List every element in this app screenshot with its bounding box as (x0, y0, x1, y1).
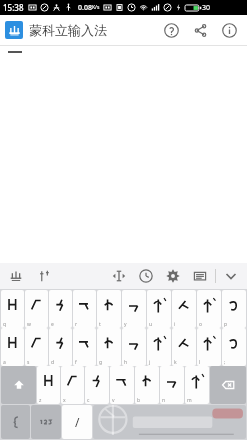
button[interactable]: u (147, 290, 171, 328)
button[interactable]: b (135, 366, 159, 404)
button[interactable]: Info (218, 19, 240, 41)
button[interactable]: g (97, 328, 121, 366)
button[interactable]: d (49, 328, 72, 366)
button[interactable]: j (147, 328, 171, 366)
button[interactable]: Layout (190, 266, 210, 286)
staticText: 蒙科立输入法 (29, 22, 107, 38)
button[interactable]: y (122, 290, 146, 328)
staticText: z (39, 397, 42, 404)
button[interactable]: k (172, 328, 196, 366)
staticText: 0.08 (78, 3, 92, 13)
staticText: n (162, 397, 166, 404)
staticText: r (75, 321, 78, 328)
staticText: p (224, 321, 228, 328)
button[interactable]: v (110, 366, 134, 404)
button[interactable]: Move cursor (109, 266, 129, 286)
staticText: u (149, 321, 153, 328)
staticText: e (51, 321, 54, 328)
button[interactable]: s (25, 328, 48, 366)
staticText: x (63, 397, 66, 404)
button[interactable]: h (122, 328, 146, 366)
button[interactable]: Hide keyboard (221, 266, 241, 286)
button[interactable]: Symbols (1, 405, 30, 439)
button[interactable]: f (73, 328, 96, 366)
button[interactable]: c (85, 366, 109, 404)
staticText: h (124, 359, 128, 366)
staticText: v (112, 397, 115, 404)
button[interactable]: ; (222, 328, 246, 366)
staticText: k (174, 359, 177, 366)
staticText: 30 (202, 3, 211, 13)
button[interactable]: o (197, 290, 221, 328)
button[interactable]: Help (160, 19, 182, 41)
staticText: c (87, 397, 90, 404)
button[interactable]: Numbers (31, 405, 61, 439)
button[interactable]: Backspace (210, 366, 246, 404)
staticText: l (199, 359, 201, 366)
button[interactable]: p (222, 290, 246, 328)
staticText: 15:38 (3, 2, 24, 13)
button[interactable]: Settings (163, 266, 183, 286)
staticText: j (149, 359, 151, 366)
staticText: / (75, 414, 80, 430)
button[interactable]: Space (93, 405, 246, 439)
button[interactable]: l (197, 328, 221, 366)
button[interactable]: w (25, 290, 48, 328)
staticText: t (99, 321, 101, 328)
staticText: f (75, 359, 77, 366)
button[interactable]: Share (189, 19, 211, 41)
staticText: g (99, 359, 103, 366)
staticText: q (3, 321, 7, 328)
staticText: i (174, 321, 176, 328)
button[interactable]: m (185, 366, 209, 404)
button[interactable]: q (1, 290, 24, 328)
button[interactable]: t (97, 290, 121, 328)
staticText: ; (224, 359, 226, 366)
button[interactable]: Mongolian mode (6, 266, 26, 286)
button[interactable]: a (1, 328, 24, 366)
staticText: K/s (92, 4, 100, 11)
button[interactable]: x (61, 366, 84, 404)
staticText: s (27, 359, 30, 366)
button[interactable]: e (49, 290, 72, 328)
staticText: w (27, 321, 31, 328)
staticText: y (124, 321, 127, 328)
button[interactable]: i (172, 290, 196, 328)
button[interactable]: z (37, 366, 60, 404)
staticText: a (3, 359, 6, 366)
button[interactable]: Candidate (34, 266, 54, 286)
button[interactable]: r (73, 290, 96, 328)
button[interactable]: n (160, 366, 184, 404)
staticText: o (199, 321, 203, 328)
button[interactable]: Shift (1, 366, 36, 404)
button[interactable]: History (136, 266, 156, 286)
staticText: b (137, 397, 141, 404)
staticText: m (187, 397, 192, 404)
button[interactable]: / (62, 405, 92, 439)
staticText: d (51, 359, 55, 366)
